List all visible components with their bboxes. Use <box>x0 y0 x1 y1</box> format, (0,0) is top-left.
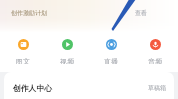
staticText: 创作人中心 <box>13 83 52 93</box>
staticText: 创作激励计划 <box>11 9 47 17</box>
staticText: 查看 <box>135 9 147 17</box>
button[interactable]: 图文 <box>2 32 44 64</box>
staticText: 视频 <box>60 57 74 64</box>
button[interactable]: 视频 <box>46 32 88 64</box>
staticText: 直播 <box>104 57 118 64</box>
staticText: 音频 <box>148 57 162 64</box>
button[interactable]: 音频 <box>134 32 176 64</box>
staticText: 图文 <box>16 57 30 64</box>
staticText: 草稿箱 <box>148 84 166 92</box>
button[interactable]: 创作激励计划 <box>0 0 178 32</box>
button[interactable]: 创作人中心 <box>4 72 174 99</box>
button[interactable]: 直播 <box>90 32 132 64</box>
